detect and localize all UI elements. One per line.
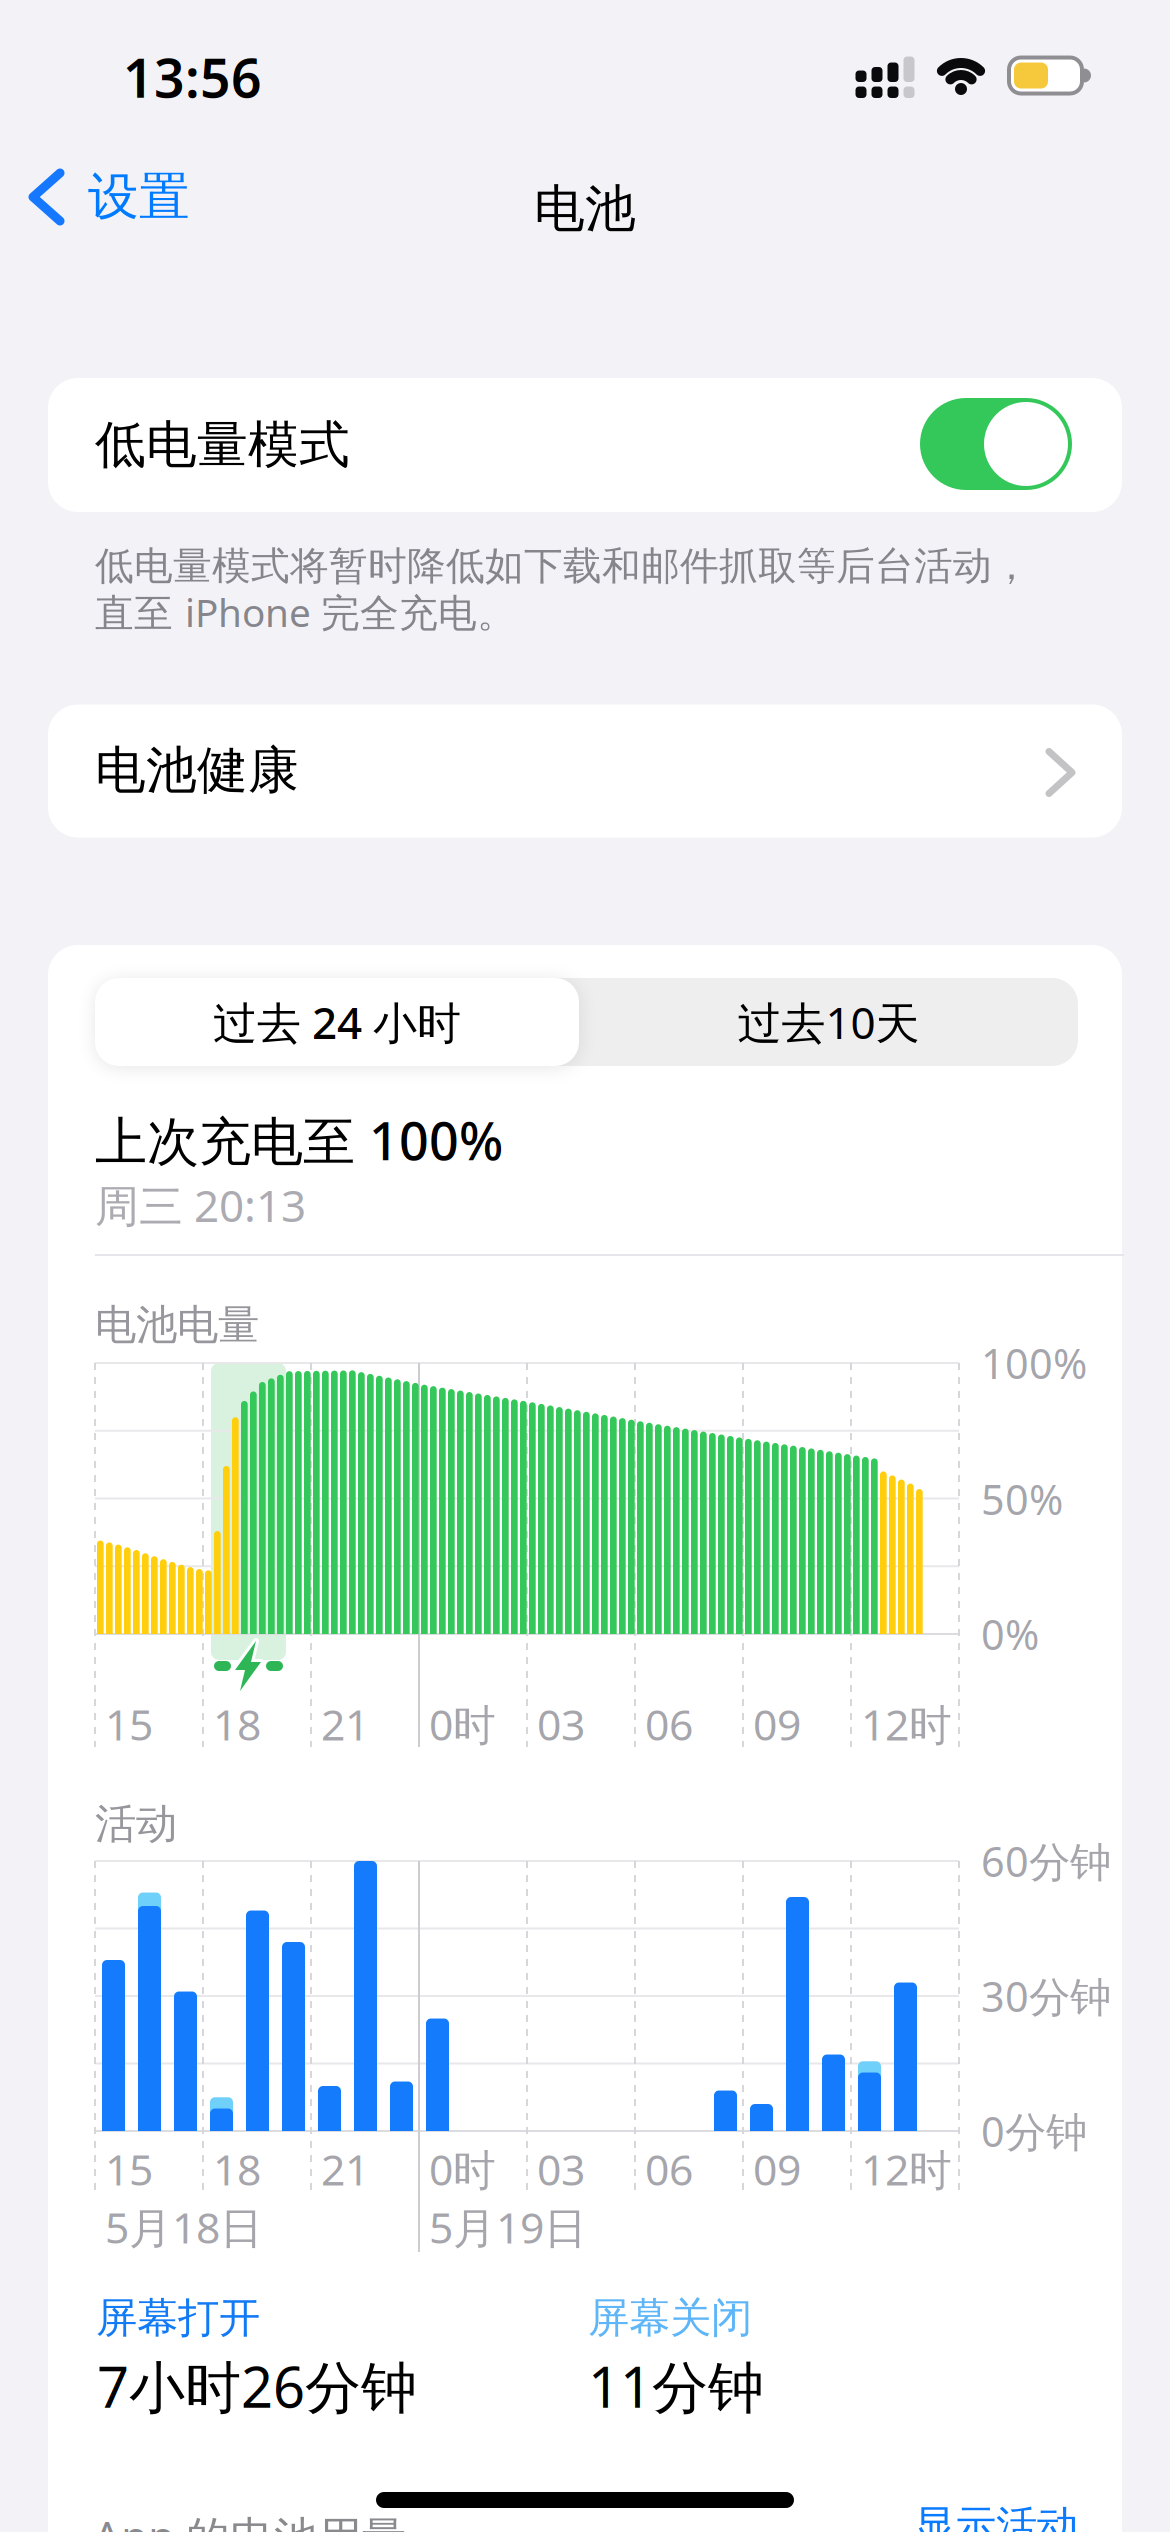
staticText: 21 bbox=[321, 2141, 369, 2197]
staticText: 过去 24 小时 bbox=[213, 993, 461, 1051]
staticText: 100% bbox=[981, 1336, 1087, 1390]
staticText: 03 bbox=[537, 1696, 585, 1752]
button[interactable]: 过去10天 bbox=[579, 978, 1078, 1066]
staticText: 电池健康 bbox=[95, 739, 299, 802]
staticText: 活动 bbox=[95, 1799, 177, 1849]
staticText: 21 bbox=[321, 1696, 369, 1752]
staticText: 低电量模式 bbox=[95, 414, 350, 476]
staticText: 18 bbox=[213, 2141, 261, 2197]
staticText: 60分钟 bbox=[981, 1834, 1111, 1888]
staticText: 12时 bbox=[861, 2141, 952, 2197]
staticText: 低电量模式将暂时降低如下载和邮件抓取等后台活动， bbox=[95, 542, 1031, 590]
staticText: 5月18日 bbox=[105, 2199, 263, 2255]
staticText: 11分钟 bbox=[588, 2349, 764, 2423]
staticText: 09 bbox=[753, 1696, 801, 1752]
staticText: App 的电池用量 bbox=[93, 2507, 406, 2532]
staticText: 18 bbox=[213, 1696, 261, 1752]
staticText: 09 bbox=[753, 2141, 801, 2197]
staticText: 15 bbox=[105, 1696, 153, 1752]
button[interactable]: 显示活动 bbox=[914, 2494, 1114, 2532]
button[interactable]: 过去 24 小时 bbox=[95, 978, 579, 1066]
staticText: 上次充电至 100% bbox=[95, 1105, 503, 1175]
staticText: 30分钟 bbox=[981, 1969, 1111, 2023]
button[interactable]: 低电量模式 bbox=[920, 398, 1072, 490]
staticText: 过去10天 bbox=[737, 993, 919, 1051]
button[interactable]: 设置 bbox=[22, 164, 252, 254]
staticText: 屏幕打开 bbox=[96, 2293, 260, 2343]
staticText: 12时 bbox=[861, 1696, 952, 1752]
staticText: 03 bbox=[537, 2141, 585, 2197]
staticText: 50% bbox=[981, 1472, 1063, 1526]
staticText: 电池电量 bbox=[95, 1300, 259, 1350]
staticText: 0% bbox=[981, 1607, 1039, 1661]
staticText: 7小时26分钟 bbox=[97, 2349, 417, 2423]
button[interactable]: 电池健康 bbox=[48, 704, 1122, 837]
staticText: 13:56 bbox=[123, 42, 262, 112]
staticText: 电池 bbox=[534, 178, 636, 240]
staticText: 显示活动 bbox=[914, 2501, 1078, 2532]
staticText: 06 bbox=[645, 2141, 693, 2197]
staticText: 周三 20:13 bbox=[95, 1176, 306, 1234]
staticText: 5月19日 bbox=[429, 2199, 587, 2255]
staticText: 0时 bbox=[429, 2141, 496, 2197]
staticText: 06 bbox=[645, 1696, 693, 1752]
staticText: 0时 bbox=[429, 1696, 496, 1752]
staticText: 0分钟 bbox=[981, 2104, 1087, 2158]
staticText: 15 bbox=[105, 2141, 153, 2197]
staticText: 设置 bbox=[88, 166, 190, 228]
staticText: 屏幕关闭 bbox=[588, 2293, 752, 2343]
staticText: 直至 iPhone 完全充电。 bbox=[95, 586, 516, 638]
